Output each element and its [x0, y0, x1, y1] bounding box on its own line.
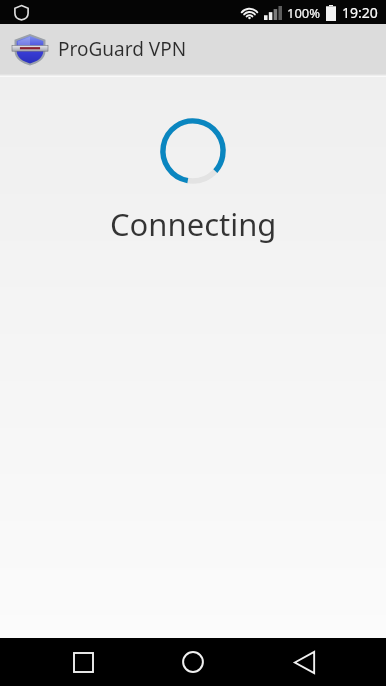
button[interactable]: Back [276, 638, 332, 686]
staticText: ProGuard VPN [58, 36, 187, 62]
button[interactable]: ProGuard VPN [0, 24, 386, 74]
button[interactable]: Home [165, 638, 221, 686]
button[interactable]: Recent apps [55, 638, 111, 686]
staticText: 19:20 [342, 3, 378, 22]
staticText: 100% [287, 4, 321, 22]
staticText: Connecting [110, 203, 277, 245]
